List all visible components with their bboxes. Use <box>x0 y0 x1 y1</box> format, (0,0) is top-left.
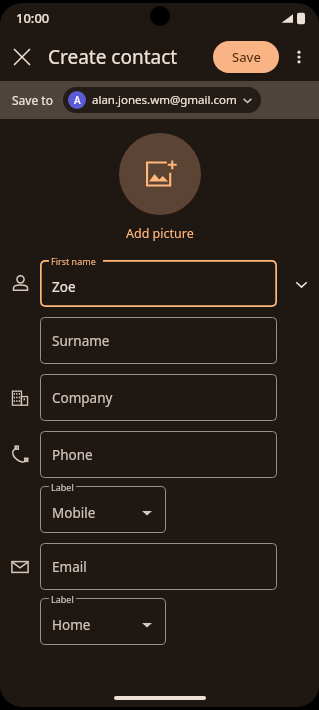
button[interactable]: Phone <box>40 431 277 478</box>
button[interactable]: More options <box>279 37 319 77</box>
button[interactable]: Add picture <box>119 133 201 215</box>
staticText: Company <box>52 389 113 407</box>
staticText: A <box>74 93 81 107</box>
button[interactable]: Email <box>40 543 277 590</box>
button[interactable]: Company <box>40 374 277 421</box>
staticText: alan.jones.wm@gmail.com <box>92 92 237 108</box>
staticText: Mobile <box>52 504 96 522</box>
staticText: Email <box>52 558 87 576</box>
staticText: Add picture <box>126 225 194 242</box>
staticText: Zoe <box>52 278 76 296</box>
staticText: Save to <box>12 92 53 108</box>
staticText: Create contact <box>48 44 178 70</box>
button[interactable]: First name <box>40 260 277 307</box>
button[interactable]: Label <box>40 598 166 645</box>
button[interactable]: Expand <box>283 266 319 302</box>
button[interactable]: Save <box>213 41 279 73</box>
staticText: First name <box>51 255 96 267</box>
staticText: Save <box>232 48 261 66</box>
button[interactable]: Surname <box>40 317 277 364</box>
button[interactable]: Label <box>40 486 166 533</box>
staticText: Home <box>52 616 91 634</box>
staticText: Label <box>51 593 74 605</box>
staticText: Phone <box>52 446 93 464</box>
button[interactable]: A <box>63 87 261 113</box>
staticText: 10:00 <box>16 9 50 27</box>
staticText: Label <box>51 481 74 493</box>
button[interactable]: Close <box>0 35 44 79</box>
staticText: Surname <box>52 332 110 350</box>
